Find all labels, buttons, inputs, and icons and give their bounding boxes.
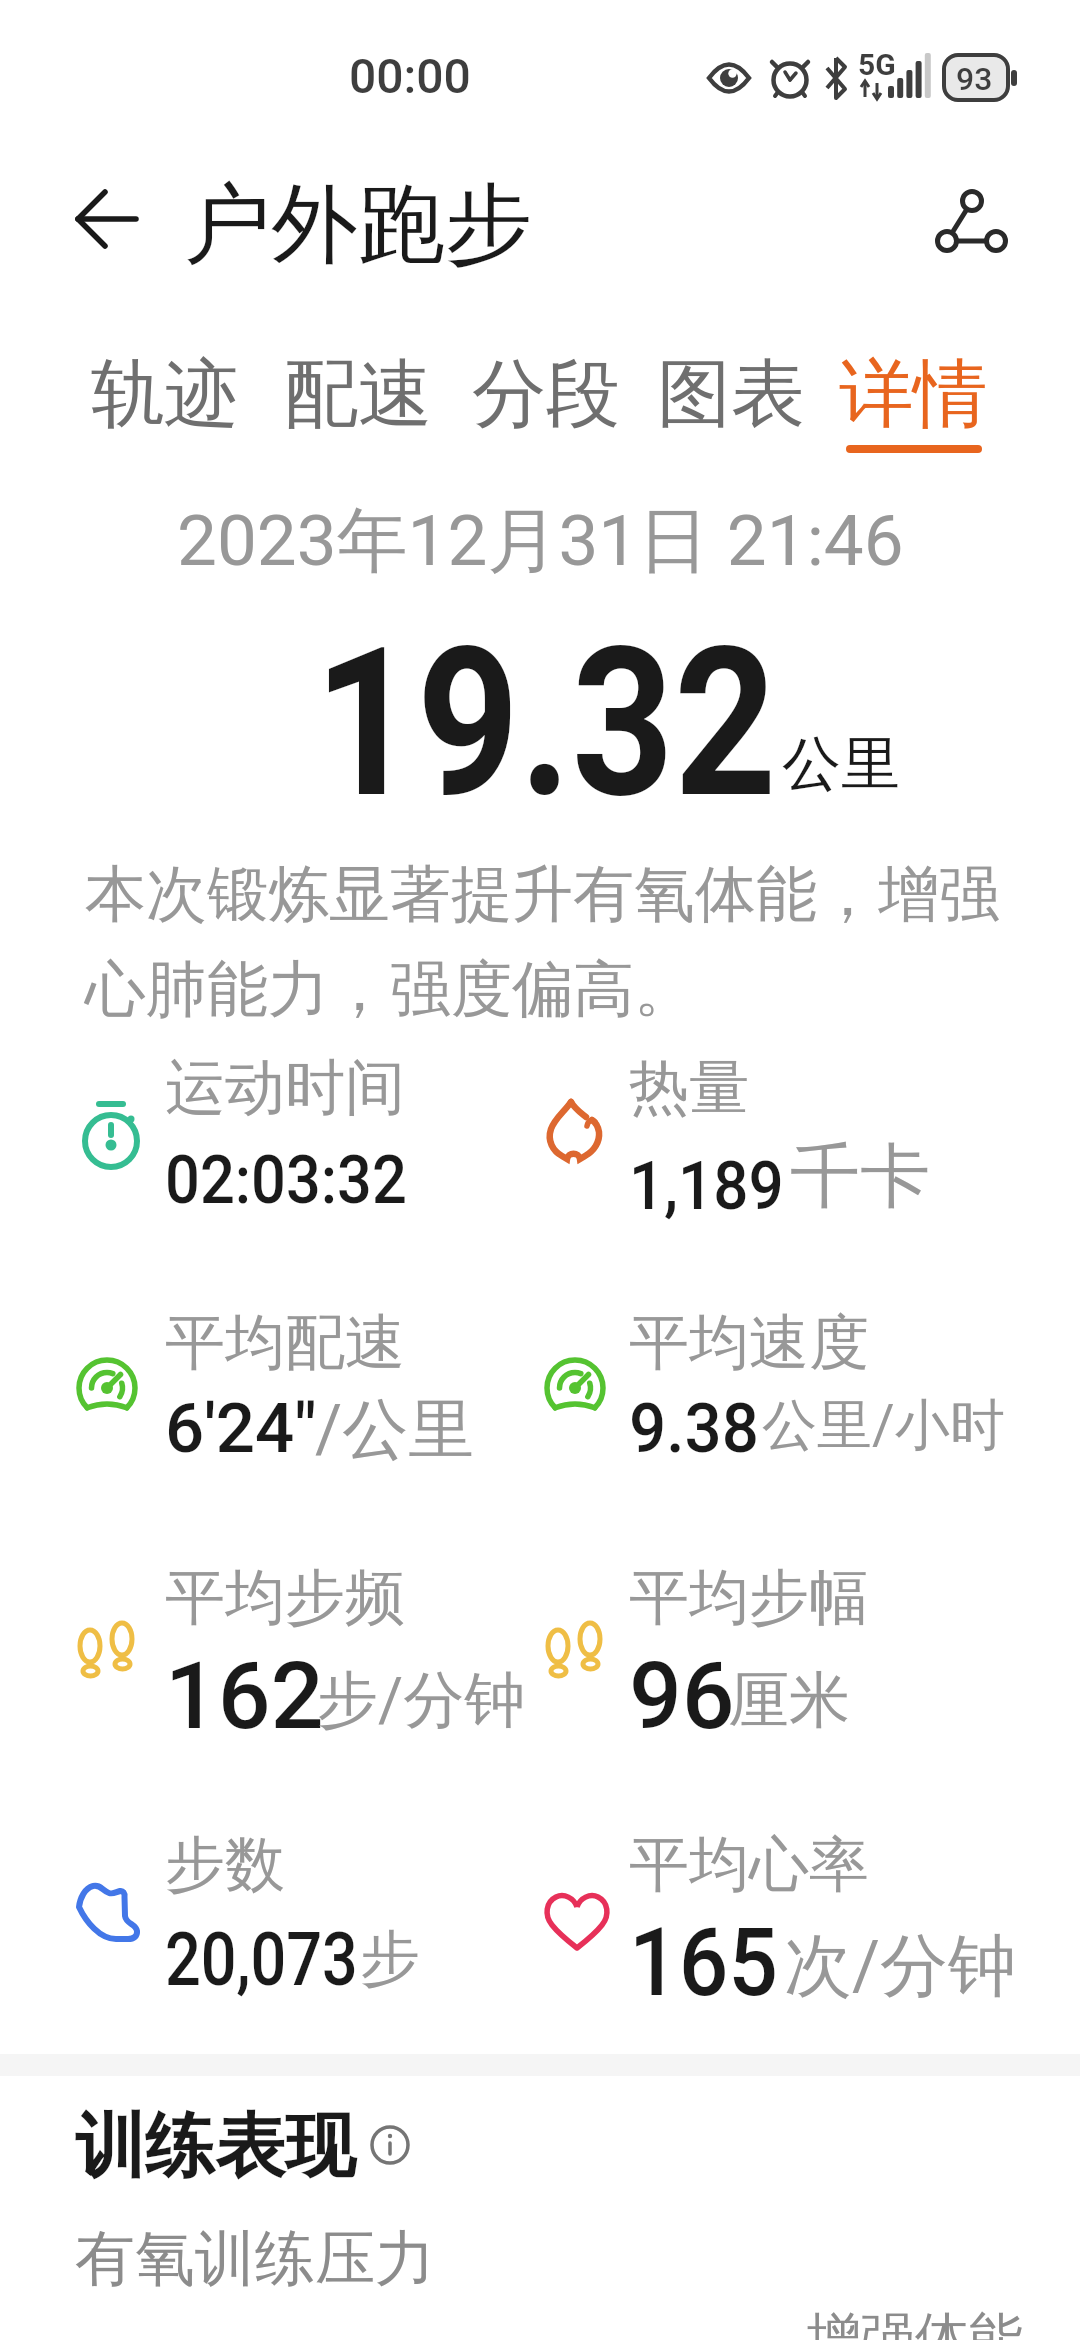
staticText: 户外跑步 [184,170,532,280]
staticText: 02:03:32 [165,1142,408,1219]
staticText: 公里 [782,727,900,801]
staticText: 步数 [165,1827,285,1903]
staticText: 19.32 [314,603,777,844]
button[interactable] [60,175,150,265]
staticText: 162 [165,1642,324,1751]
staticText: 1,189 [629,1148,784,1225]
staticText: 分段 [472,348,620,441]
staticText: 平均配速 [165,1305,405,1381]
staticText: 训练表现 [75,2103,355,2191]
staticText: /公里 [315,1388,475,1471]
staticText: 96 [629,1642,735,1751]
staticText: 2023年12月31日 21:46 [177,497,904,586]
button[interactable]: 轨迹 [81,348,249,441]
staticText: 平均步幅 [629,1560,869,1636]
staticText: 次/分钟 [784,1924,1017,2010]
button[interactable]: 配速 [274,348,442,441]
staticText: 平均速度 [629,1305,869,1381]
staticText: 配速 [284,348,432,441]
staticText: 6'24" [165,1388,317,1469]
staticText: 增强体能 [807,2304,1023,2340]
staticText: 平均心率 [629,1827,869,1903]
staticText: 165 [629,1907,778,2018]
staticText: 厘米 [728,1662,850,1739]
button[interactable]: 分段 [462,348,630,441]
staticText: 千卡 [790,1133,930,1221]
staticText: 00:00 [349,48,471,104]
staticText: 本次锻炼显著提升有氧体能，增强 心肺能力，强度偏高。 [85,856,1000,1028]
staticText: 9.38 [629,1388,759,1469]
staticText: 热量 [629,1050,749,1126]
staticText: 图表 [657,348,805,441]
button[interactable] [369,2124,413,2168]
staticText: 步 [360,1921,420,1997]
button[interactable]: 详情 [829,348,997,441]
staticText: 有氧训练压力 [75,2221,435,2297]
staticText: 运动时间 [165,1050,405,1126]
staticText: 平均步频 [165,1560,405,1636]
staticText: 公里/小时 [762,1391,1005,1460]
staticText: 5G [858,47,896,82]
staticText: 详情 [839,348,987,441]
button[interactable]: 图表 [647,348,815,441]
staticText: 20,073 [165,1915,358,2003]
staticText: 轨迹 [91,348,239,441]
staticText: 93 [956,60,993,98]
button[interactable] [925,175,1020,270]
staticText: 步/分钟 [317,1662,526,1739]
